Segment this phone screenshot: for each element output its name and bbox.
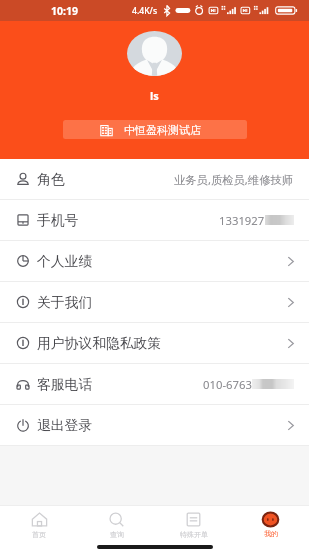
staticText: 4.4K/s	[132, 5, 158, 17]
staticText: 退出登录	[37, 417, 93, 434]
staticText: 角色	[37, 171, 65, 188]
button[interactable]: 用户协议和隐私政策	[0, 323, 309, 363]
staticText: 业务员,质检员,维修技师	[174, 172, 294, 187]
button[interactable]: 我的	[232, 506, 309, 543]
staticText: 个人业绩	[37, 253, 93, 270]
button[interactable]: 关于我们	[0, 282, 309, 322]
staticText: 查询	[110, 530, 124, 539]
button[interactable]: 特殊开单	[155, 506, 232, 543]
button[interactable]: 角色	[0, 159, 309, 199]
staticText: 用户协议和隐私政策	[37, 335, 162, 352]
button[interactable]: 退出登录	[0, 405, 309, 445]
staticText: 010-6763	[203, 377, 252, 392]
button[interactable]: 首页	[0, 506, 78, 543]
button[interactable]: 个人业绩	[0, 241, 309, 281]
button[interactable]: 中恒盈科测试店	[63, 120, 247, 139]
staticText: 关于我们	[37, 294, 93, 311]
button[interactable]: 查询	[78, 506, 155, 543]
staticText: 10:19	[51, 4, 78, 18]
button[interactable]: 手机号	[0, 200, 309, 240]
staticText: 手机号	[37, 212, 79, 229]
button[interactable]: 客服电话	[0, 364, 309, 404]
staticText: 1331927	[219, 213, 265, 228]
staticText: 中恒盈科测试店	[124, 123, 201, 137]
staticText: 客服电话	[37, 376, 93, 393]
staticText: ls	[150, 88, 159, 103]
staticText: 我的	[264, 529, 278, 538]
staticText: 首页	[32, 530, 46, 539]
staticText: 特殊开单	[180, 530, 208, 539]
